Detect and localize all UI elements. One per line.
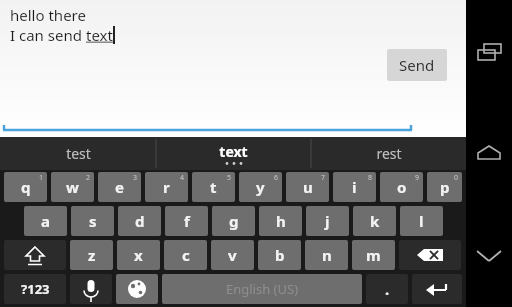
staticText: I can send xyxy=(10,25,86,45)
button[interactable]: d xyxy=(118,206,161,236)
staticText: hello there xyxy=(10,5,86,25)
staticText: q xyxy=(21,177,31,197)
button[interactable]: l xyxy=(400,206,443,236)
staticText: j xyxy=(325,211,330,231)
button[interactable]: i xyxy=(333,172,376,202)
button[interactable]: b xyxy=(258,240,301,270)
button[interactable]: s xyxy=(71,206,114,236)
staticText: 3 xyxy=(133,173,138,183)
staticText: u xyxy=(303,177,313,197)
button[interactable]: test xyxy=(0,137,156,170)
staticText: i xyxy=(352,177,357,197)
button[interactable]: y xyxy=(239,172,282,202)
button[interactable]: Voice input xyxy=(70,274,112,304)
button[interactable]: g xyxy=(212,206,255,236)
button[interactable]: r xyxy=(145,172,188,202)
staticText: 4 xyxy=(180,173,185,183)
staticText: 2 xyxy=(86,173,91,183)
staticText: b xyxy=(275,245,285,265)
button[interactable]: q xyxy=(4,172,47,202)
button[interactable]: h xyxy=(259,206,302,236)
button[interactable]: u xyxy=(286,172,329,202)
staticText: v xyxy=(228,245,237,265)
staticText: h xyxy=(276,211,286,231)
staticText: k xyxy=(370,211,380,231)
button[interactable]: k xyxy=(353,206,396,236)
staticText: . xyxy=(385,279,390,299)
staticText: n xyxy=(322,245,332,265)
staticText: 0 xyxy=(454,173,459,183)
button[interactable]: j xyxy=(306,206,349,236)
button[interactable]: Recents xyxy=(466,0,512,102)
staticText: m xyxy=(366,245,381,265)
button[interactable]: p xyxy=(427,172,462,202)
staticText: 9 xyxy=(415,173,420,183)
button[interactable]: hello there xyxy=(0,0,466,137)
staticText: z xyxy=(88,245,96,265)
staticText: x xyxy=(134,245,143,265)
staticText: f xyxy=(184,211,190,231)
button[interactable]: e xyxy=(98,172,141,202)
staticText: 7 xyxy=(321,173,326,183)
button[interactable]: o xyxy=(380,172,423,202)
button[interactable]: Home xyxy=(466,102,512,204)
button[interactable]: x xyxy=(117,240,160,270)
button[interactable]: w xyxy=(51,172,94,202)
staticText: ?123 xyxy=(21,280,50,298)
button[interactable]: f xyxy=(165,206,208,236)
button[interactable]: c xyxy=(164,240,207,270)
staticText: c xyxy=(182,245,190,265)
staticText: y xyxy=(256,177,265,197)
staticText: t xyxy=(210,177,217,197)
button[interactable]: Send xyxy=(387,49,447,81)
staticText: s xyxy=(89,211,97,231)
button[interactable]: a xyxy=(24,206,67,236)
staticText: w xyxy=(66,177,79,197)
button[interactable]: Back xyxy=(466,204,512,307)
staticText: p xyxy=(440,177,450,197)
button[interactable]: Shift xyxy=(4,240,66,270)
staticText: e xyxy=(115,177,124,197)
staticText: d xyxy=(135,211,145,231)
staticText: r xyxy=(163,177,170,197)
button[interactable]: text xyxy=(156,137,311,170)
button[interactable]: Enter xyxy=(412,274,462,304)
staticText: l xyxy=(419,211,424,231)
staticText: text xyxy=(219,142,248,161)
staticText: English (US) xyxy=(226,280,299,298)
button[interactable]: Backspace xyxy=(399,240,461,270)
button[interactable]: t xyxy=(192,172,235,202)
staticText: text xyxy=(86,25,113,45)
button[interactable]: m xyxy=(352,240,395,270)
button[interactable]: n xyxy=(305,240,348,270)
staticText: 8 xyxy=(368,173,373,183)
button[interactable]: . xyxy=(366,274,408,304)
button[interactable]: z xyxy=(70,240,113,270)
staticText: rest xyxy=(376,144,402,163)
staticText: 1 xyxy=(39,173,44,183)
button[interactable]: v xyxy=(211,240,254,270)
button[interactable]: ?123 xyxy=(4,274,66,304)
staticText: Send xyxy=(399,55,435,75)
staticText: g xyxy=(229,211,239,231)
button[interactable]: Change language xyxy=(116,274,158,304)
staticText: a xyxy=(41,211,50,231)
staticText: o xyxy=(397,177,407,197)
staticText: 5 xyxy=(227,173,232,183)
button[interactable]: rest xyxy=(311,137,466,170)
staticText: 6 xyxy=(274,173,279,183)
button[interactable]: English (US) xyxy=(162,274,362,304)
staticText: test xyxy=(66,144,91,163)
